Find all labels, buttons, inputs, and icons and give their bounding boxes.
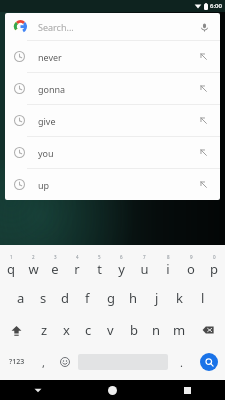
button[interactable]: . — [171, 346, 192, 378]
staticText: t — [97, 260, 102, 278]
staticText: 5 — [98, 254, 101, 260]
button[interactable]: 4 — [66, 249, 88, 282]
staticText: q — [7, 260, 15, 278]
button[interactable]: d — [54, 282, 76, 314]
button[interactable]: Insert suggestion gonna — [196, 81, 211, 96]
staticText: l — [201, 289, 205, 307]
staticText: p — [210, 260, 218, 278]
button[interactable]: Search... — [5, 13, 220, 40]
button[interactable]: l — [191, 282, 214, 314]
button[interactable]: Search — [200, 353, 218, 371]
button[interactable]: 7 — [133, 249, 156, 282]
staticText: ?123 — [9, 357, 25, 367]
button[interactable]: 9 — [179, 249, 202, 282]
staticText: x — [63, 321, 70, 339]
button[interactable]: x — [55, 314, 77, 346]
staticText: give — [38, 115, 56, 127]
button[interactable]: 5 — [88, 249, 110, 282]
button[interactable]: g — [99, 282, 122, 314]
button[interactable]: Shift — [0, 314, 33, 346]
button[interactable]: 0 — [202, 249, 225, 282]
button[interactable]: Insert suggestion up — [196, 177, 211, 192]
staticText: m — [173, 321, 186, 339]
button[interactable]: Voice search — [197, 20, 211, 34]
button[interactable]: give — [5, 105, 220, 136]
button[interactable]: Emoji — [54, 346, 75, 378]
staticText: c — [85, 321, 92, 339]
staticText: gonna — [38, 83, 66, 95]
button[interactable]: , — [33, 346, 54, 378]
button[interactable]: ?123 — [0, 346, 33, 378]
button[interactable]: b — [122, 314, 145, 346]
staticText: e — [51, 260, 59, 278]
button[interactable]: v — [99, 314, 122, 346]
button[interactable]: f — [76, 282, 99, 314]
button[interactable]: Backspace — [191, 314, 225, 346]
button[interactable]: h — [122, 282, 145, 314]
button[interactable]: Insert suggestion you — [196, 145, 211, 160]
button[interactable]: 8 — [156, 249, 179, 282]
staticText: never — [38, 51, 62, 63]
staticText: 7 — [143, 254, 146, 260]
button[interactable]: up — [5, 169, 220, 200]
staticText: r — [74, 260, 80, 278]
button[interactable]: 3 — [44, 249, 66, 282]
button[interactable]: you — [5, 137, 220, 168]
staticText: o — [187, 260, 195, 278]
staticText: 1 — [10, 254, 13, 260]
staticText: k — [176, 289, 183, 307]
staticText: i — [166, 260, 170, 278]
staticText: d — [61, 289, 69, 307]
staticText: 6 — [120, 254, 123, 260]
button[interactable]: a — [10, 282, 32, 314]
staticText: 8 — [167, 254, 170, 260]
button[interactable]: Insert suggestion give — [196, 113, 211, 128]
button[interactable]: 2 — [22, 249, 44, 282]
staticText: h — [129, 289, 138, 307]
staticText: a — [17, 289, 25, 307]
staticText: n — [152, 321, 161, 339]
button[interactable]: Recent apps — [150, 380, 225, 400]
staticText: . — [180, 355, 183, 370]
button[interactable]: never — [5, 41, 220, 72]
staticText: j — [155, 289, 159, 307]
staticText: u — [140, 260, 149, 278]
staticText: w — [28, 260, 39, 278]
staticText: you — [38, 147, 54, 159]
staticText: up — [38, 179, 50, 191]
button[interactable]: c — [77, 314, 99, 346]
staticText: 4 — [76, 254, 79, 260]
staticText: 2 — [32, 254, 35, 260]
button[interactable]: z — [33, 314, 55, 346]
staticText: 9 — [190, 254, 193, 260]
staticText: Search... — [38, 21, 74, 33]
button[interactable]: 6 — [110, 249, 133, 282]
button[interactable]: Home — [75, 380, 150, 400]
button[interactable]: n — [145, 314, 168, 346]
staticText: 6:00 — [210, 2, 222, 10]
staticText: s — [40, 289, 47, 307]
button[interactable]: s — [32, 282, 54, 314]
button[interactable]: m — [168, 314, 191, 346]
staticText: 3 — [54, 254, 57, 260]
staticText: z — [41, 321, 48, 339]
button[interactable]: j — [145, 282, 168, 314]
button[interactable]: Insert suggestion never — [196, 49, 211, 64]
staticText: g — [107, 289, 115, 307]
button[interactable]: k — [168, 282, 191, 314]
button[interactable]: 1 — [0, 249, 22, 282]
staticText: f — [85, 289, 90, 307]
staticText: , — [42, 355, 45, 370]
staticText: 0 — [213, 254, 216, 260]
button[interactable]: Hide keyboard — [0, 380, 75, 400]
staticText: y — [118, 260, 125, 278]
staticText: b — [130, 321, 138, 339]
button[interactable]: gonna — [5, 73, 220, 104]
staticText: v — [107, 321, 114, 339]
